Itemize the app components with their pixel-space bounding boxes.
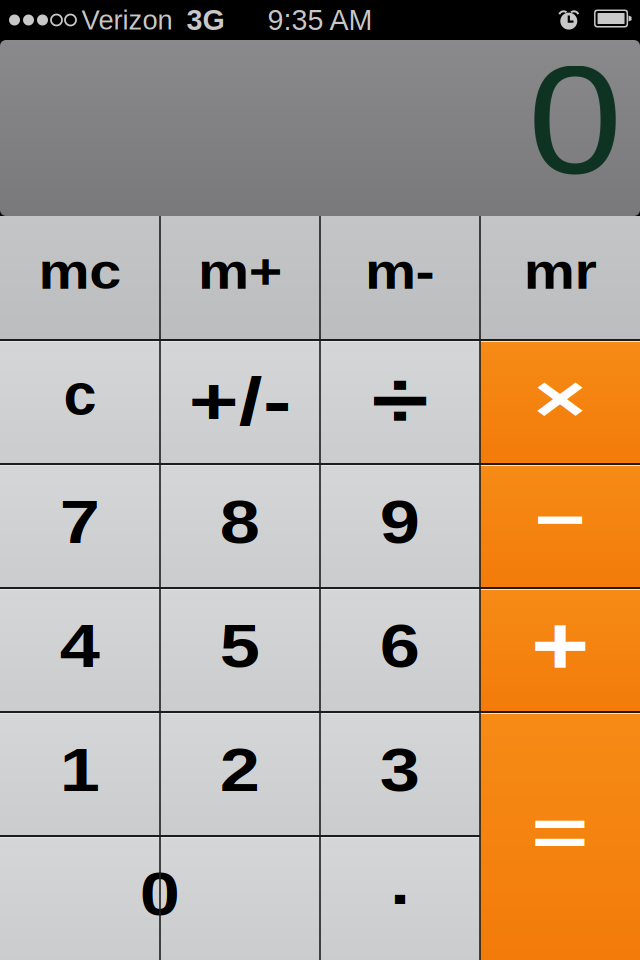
button[interactable]: 4 — [0, 588, 160, 712]
button[interactable]: 6 — [320, 588, 480, 712]
button[interactable]: 2 — [160, 712, 320, 836]
staticText: 6 — [383, 612, 417, 680]
staticText: = — [540, 796, 579, 870]
button[interactable]: 9 — [320, 464, 480, 588]
staticText: 0 — [143, 860, 177, 928]
button[interactable]: 5 — [160, 588, 320, 712]
staticText: ÷ — [378, 355, 422, 445]
button[interactable]: 8 — [160, 464, 320, 588]
button[interactable]: . — [320, 836, 480, 960]
button[interactable]: m+ — [160, 216, 320, 340]
staticText: − — [540, 482, 579, 557]
button[interactable]: + — [480, 588, 640, 712]
staticText: 3G — [186, 4, 224, 36]
button[interactable]: 7 — [0, 464, 160, 588]
staticText: 8 — [223, 488, 257, 556]
button[interactable]: ÷ — [320, 340, 480, 464]
staticText: 9 — [383, 488, 417, 556]
staticText: 7 — [63, 488, 97, 556]
button[interactable]: 3 — [320, 712, 480, 836]
button[interactable]: 0 — [0, 836, 320, 960]
staticText: m+ — [203, 244, 276, 299]
button[interactable]: c — [0, 340, 160, 464]
button[interactable]: +/- — [160, 340, 320, 464]
button[interactable]: mc — [0, 216, 160, 340]
staticText: 5 — [223, 612, 257, 680]
staticText: mr — [528, 244, 591, 299]
staticText: 3 — [383, 736, 417, 804]
button[interactable]: m- — [320, 216, 480, 340]
staticText: 2 — [223, 736, 257, 804]
staticText: × — [540, 361, 579, 436]
staticText: 0 — [532, 34, 618, 206]
staticText: 9:35 AM — [267, 4, 372, 36]
staticText: Verizon — [81, 5, 172, 35]
button[interactable]: mr — [480, 216, 640, 340]
staticText: 4 — [63, 612, 97, 680]
staticText: . — [391, 849, 408, 917]
staticText: m- — [369, 244, 430, 299]
button[interactable]: − — [480, 464, 640, 588]
staticText: mc — [44, 244, 116, 299]
staticText: + — [536, 600, 584, 692]
button[interactable]: × — [480, 340, 640, 464]
staticText: 1 — [63, 736, 97, 804]
staticText: c — [63, 361, 96, 427]
button[interactable]: 1 — [0, 712, 160, 836]
button[interactable]: = — [480, 712, 640, 960]
staticText: +/- — [200, 364, 280, 438]
